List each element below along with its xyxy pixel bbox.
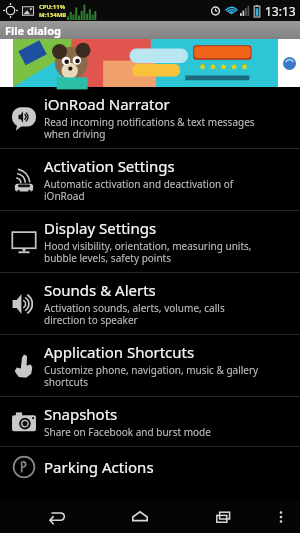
- other: Display settings: [11, 229, 37, 255]
- button[interactable]: Parking actions: [0, 447, 300, 487]
- button[interactable]: Back: [14, 501, 98, 533]
- button[interactable]: Activation settings: [0, 149, 300, 210]
- staticText: Display Settings: [44, 218, 157, 238]
- staticText: Hood visibility, orientation, measuring …: [44, 239, 252, 265]
- staticText: 13:13: [265, 3, 296, 19]
- other: Snapshots: [11, 409, 37, 435]
- staticText: Snapshots: [44, 404, 118, 424]
- other: Activation settings: [11, 167, 37, 193]
- other: Parking actions: [11, 454, 37, 480]
- staticText: Sounds & Alerts: [44, 280, 156, 300]
- button[interactable]: Recent apps: [182, 501, 266, 533]
- button[interactable]: Application shortcuts: [0, 335, 300, 396]
- staticText: CPU:11%: [39, 3, 66, 11]
- staticText: Automatic activation and deactivation of…: [44, 177, 234, 203]
- staticText: Activation sounds, alerts, volume, calls…: [44, 301, 225, 327]
- staticText: iOnRoad Narrator: [44, 94, 170, 114]
- staticText: Customize phone, navigation, music & gal…: [44, 363, 259, 389]
- staticText: Application Shortcuts: [44, 342, 195, 362]
- staticText: Parking Actions: [44, 457, 154, 477]
- button[interactable]: Pet Shop Story advertisement: [0, 39, 300, 87]
- staticText: File dialog: [5, 23, 61, 38]
- staticText: M:134MB: [39, 11, 67, 19]
- button[interactable]: Snapshots: [0, 397, 300, 446]
- button[interactable]: Home: [98, 501, 182, 533]
- button[interactable]: More options: [266, 501, 296, 533]
- staticText: Read incoming notifications & text messa…: [44, 115, 255, 141]
- other: Narrator: [11, 105, 37, 131]
- button[interactable]: Sounds and alerts: [0, 273, 300, 334]
- button[interactable]: Display settings: [0, 211, 300, 272]
- staticText: Share on Facebook and burst mode: [44, 425, 211, 439]
- other: Sounds and alerts: [11, 291, 37, 317]
- button[interactable]: Narrator: [0, 87, 300, 148]
- staticText: Activation Settings: [44, 156, 175, 176]
- other: Application shortcuts: [11, 353, 37, 379]
